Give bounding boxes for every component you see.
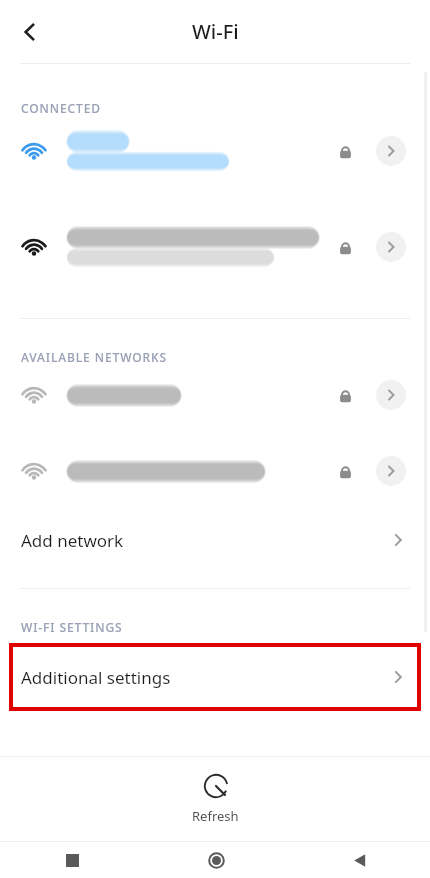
staticText: Additional settings	[21, 666, 171, 689]
button[interactable]: Add network	[0, 518, 430, 562]
other: Secured	[338, 388, 353, 403]
button[interactable]: Network details	[376, 232, 406, 262]
button[interactable]: Network details	[376, 380, 406, 410]
button[interactable]: Network details	[376, 136, 406, 166]
button[interactable]: Network details	[376, 456, 406, 486]
button[interactable]: Secured	[0, 122, 430, 180]
staticText: WI-FI SETTINGS	[21, 619, 123, 635]
button[interactable]: Home	[194, 842, 238, 878]
button[interactable]: Refresh	[192, 773, 239, 825]
other: Secured	[338, 240, 353, 255]
staticText: Wi-Fi	[192, 18, 239, 45]
button[interactable]: Recent apps	[50, 842, 94, 878]
staticText: Refresh	[192, 807, 239, 825]
staticText: CONNECTED	[21, 100, 102, 116]
staticText: AVAILABLE NETWORKS	[21, 349, 168, 365]
staticText: Add network	[21, 529, 124, 552]
button[interactable]: Secured	[0, 451, 430, 491]
button[interactable]: Secured	[0, 375, 430, 415]
other: Secured	[338, 144, 353, 159]
other: Secured	[338, 464, 353, 479]
button[interactable]: Back	[6, 8, 54, 56]
button[interactable]: Secured	[0, 218, 430, 276]
button[interactable]: Back	[337, 842, 381, 878]
button[interactable]: Additional settings	[11, 645, 419, 709]
